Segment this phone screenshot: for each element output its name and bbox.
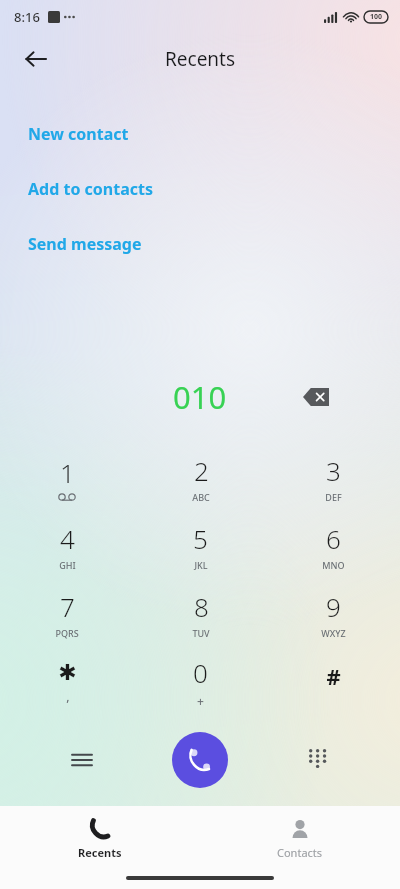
staticText: Recents — [165, 46, 236, 72]
staticText: 5 — [193, 521, 208, 556]
staticText: ✱ — [58, 660, 77, 686]
staticText: MNO — [322, 559, 345, 571]
staticText: 6 — [326, 521, 341, 556]
button[interactable]: Add to contacts — [0, 175, 400, 203]
staticText: 1 — [60, 455, 75, 490]
staticText: 4 — [60, 521, 75, 556]
staticText: 9 — [326, 589, 341, 624]
button[interactable]: 6 — [267, 512, 400, 580]
staticText: JKL — [194, 559, 208, 571]
staticText: 8:16 — [14, 8, 40, 26]
staticText: Recents — [78, 845, 122, 860]
button[interactable]: Call — [172, 732, 228, 788]
button[interactable]: 7 — [0, 580, 134, 648]
button[interactable]: 2 — [134, 444, 267, 512]
button[interactable]: Recents — [0, 806, 200, 868]
button[interactable]: 8 — [134, 580, 267, 648]
staticText: Contacts — [277, 845, 323, 860]
staticText: , — [66, 688, 70, 704]
button[interactable]: 5 — [134, 512, 267, 580]
button[interactable]: 4 — [0, 512, 134, 580]
staticText: # — [326, 661, 341, 691]
button[interactable]: Contacts — [200, 806, 400, 868]
button[interactable]: # — [267, 648, 400, 716]
button[interactable]: New contact — [0, 120, 400, 148]
staticText: Add to contacts — [28, 178, 153, 200]
button[interactable]: 9 — [267, 580, 400, 648]
staticText: 7 — [60, 589, 75, 624]
staticText: WXYZ — [321, 627, 346, 639]
button[interactable]: More options — [60, 738, 104, 782]
staticText: ABC — [192, 491, 210, 503]
button[interactable]: ✱ — [0, 648, 134, 716]
button[interactable]: 3 — [267, 444, 400, 512]
button[interactable]: Backspace — [294, 375, 338, 419]
staticText: 8 — [194, 589, 209, 624]
button[interactable]: Dialpad — [296, 738, 340, 782]
button[interactable]: 1 — [0, 444, 134, 512]
staticText: TUV — [192, 627, 210, 639]
staticText: 100 — [370, 12, 383, 22]
button[interactable]: 0 — [134, 648, 267, 716]
staticText: 010 — [173, 376, 227, 418]
staticText: PQRS — [55, 627, 79, 639]
button[interactable]: Back — [12, 35, 60, 83]
staticText: 0 — [193, 655, 208, 690]
staticText: DEF — [325, 491, 342, 503]
staticText: 3 — [326, 453, 341, 488]
staticText: Send message — [28, 233, 142, 255]
staticText: 2 — [194, 453, 209, 488]
staticText: GHI — [59, 559, 76, 571]
staticText: + — [197, 693, 204, 709]
staticText: New contact — [28, 123, 129, 145]
button[interactable]: Send message — [0, 230, 400, 258]
